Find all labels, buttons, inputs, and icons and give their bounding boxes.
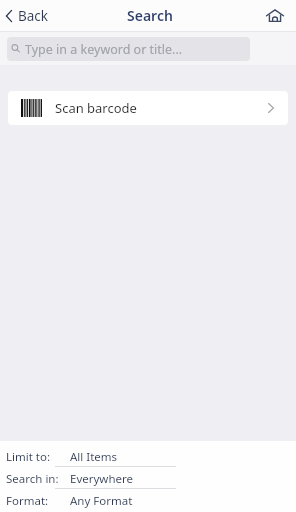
staticText: All Items [70, 449, 118, 465]
button[interactable]: Back [0, 0, 57, 31]
staticText: Back [18, 7, 49, 25]
staticText: Scan barcode [55, 99, 137, 117]
button[interactable]: Scan barcode [8, 91, 288, 125]
button[interactable]: Search in: [0, 468, 296, 490]
staticText: Search [127, 6, 173, 25]
staticText: Search in: [6, 471, 59, 487]
staticText: Limit to: [6, 449, 51, 465]
button[interactable]: Limit to: [0, 446, 296, 468]
button[interactable]: Type in a keyword or title... [7, 37, 250, 61]
button[interactable]: Home [259, 0, 290, 31]
staticText: Format: [6, 493, 49, 509]
staticText: Type in a keyword or title... [25, 41, 183, 58]
staticText: Everywhere [70, 471, 133, 487]
staticText: Any Format [70, 493, 133, 509]
button[interactable]: Format: [0, 490, 296, 512]
